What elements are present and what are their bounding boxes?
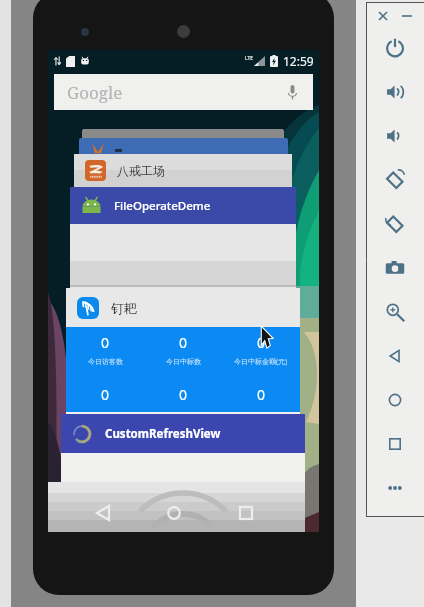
other: Voice search <box>288 85 297 100</box>
staticText: 钉耙 <box>111 300 137 316</box>
button[interactable]: Overview <box>367 422 423 466</box>
button[interactable] <box>79 138 288 158</box>
staticText: CustomRefreshView <box>105 426 221 442</box>
button[interactable]: Home <box>367 378 423 422</box>
button[interactable]: Recents <box>229 496 263 530</box>
button[interactable]: Minimize <box>398 7 416 25</box>
button[interactable]: Google <box>54 74 313 110</box>
button[interactable]: Back <box>86 496 120 530</box>
button[interactable]: 钉耙 <box>77 288 300 327</box>
staticText: 0 <box>179 333 188 352</box>
staticText: FileOperateDeme <box>114 198 211 214</box>
staticText: 今日访客数 <box>88 357 123 366</box>
button[interactable]: Close <box>374 7 392 25</box>
button[interactable]: Zoom <box>367 290 423 334</box>
button[interactable] <box>82 129 284 141</box>
button[interactable]: Home <box>157 496 191 530</box>
staticText: 12:59 <box>283 53 314 69</box>
button[interactable]: More <box>367 466 423 510</box>
button[interactable]: 八戒工场 <box>74 154 292 187</box>
button[interactable]: Rotate left <box>367 158 423 202</box>
staticText: 0 <box>101 333 110 352</box>
button[interactable]: Rotate right <box>367 202 423 246</box>
staticText: 八戒工场 <box>117 163 165 178</box>
staticText: 0 <box>179 385 188 404</box>
staticText: 0 <box>257 333 266 352</box>
button[interactable]: FileOperateDeme <box>81 187 296 224</box>
staticText: LTE <box>245 55 254 62</box>
button[interactable]: Screenshot <box>367 246 423 290</box>
button[interactable]: Back <box>367 334 423 378</box>
button[interactable]: Volume up <box>367 70 423 114</box>
button[interactable]: CustomRefreshView <box>71 414 305 453</box>
staticText: 0 <box>101 385 110 404</box>
staticText: Google <box>67 81 123 104</box>
staticText: 今日中标数 <box>166 357 201 366</box>
staticText: 0 <box>257 385 266 404</box>
button[interactable]: Power <box>367 26 423 70</box>
button[interactable]: Volume down <box>367 114 423 158</box>
staticText: 今日中标金额(元) <box>234 357 288 367</box>
